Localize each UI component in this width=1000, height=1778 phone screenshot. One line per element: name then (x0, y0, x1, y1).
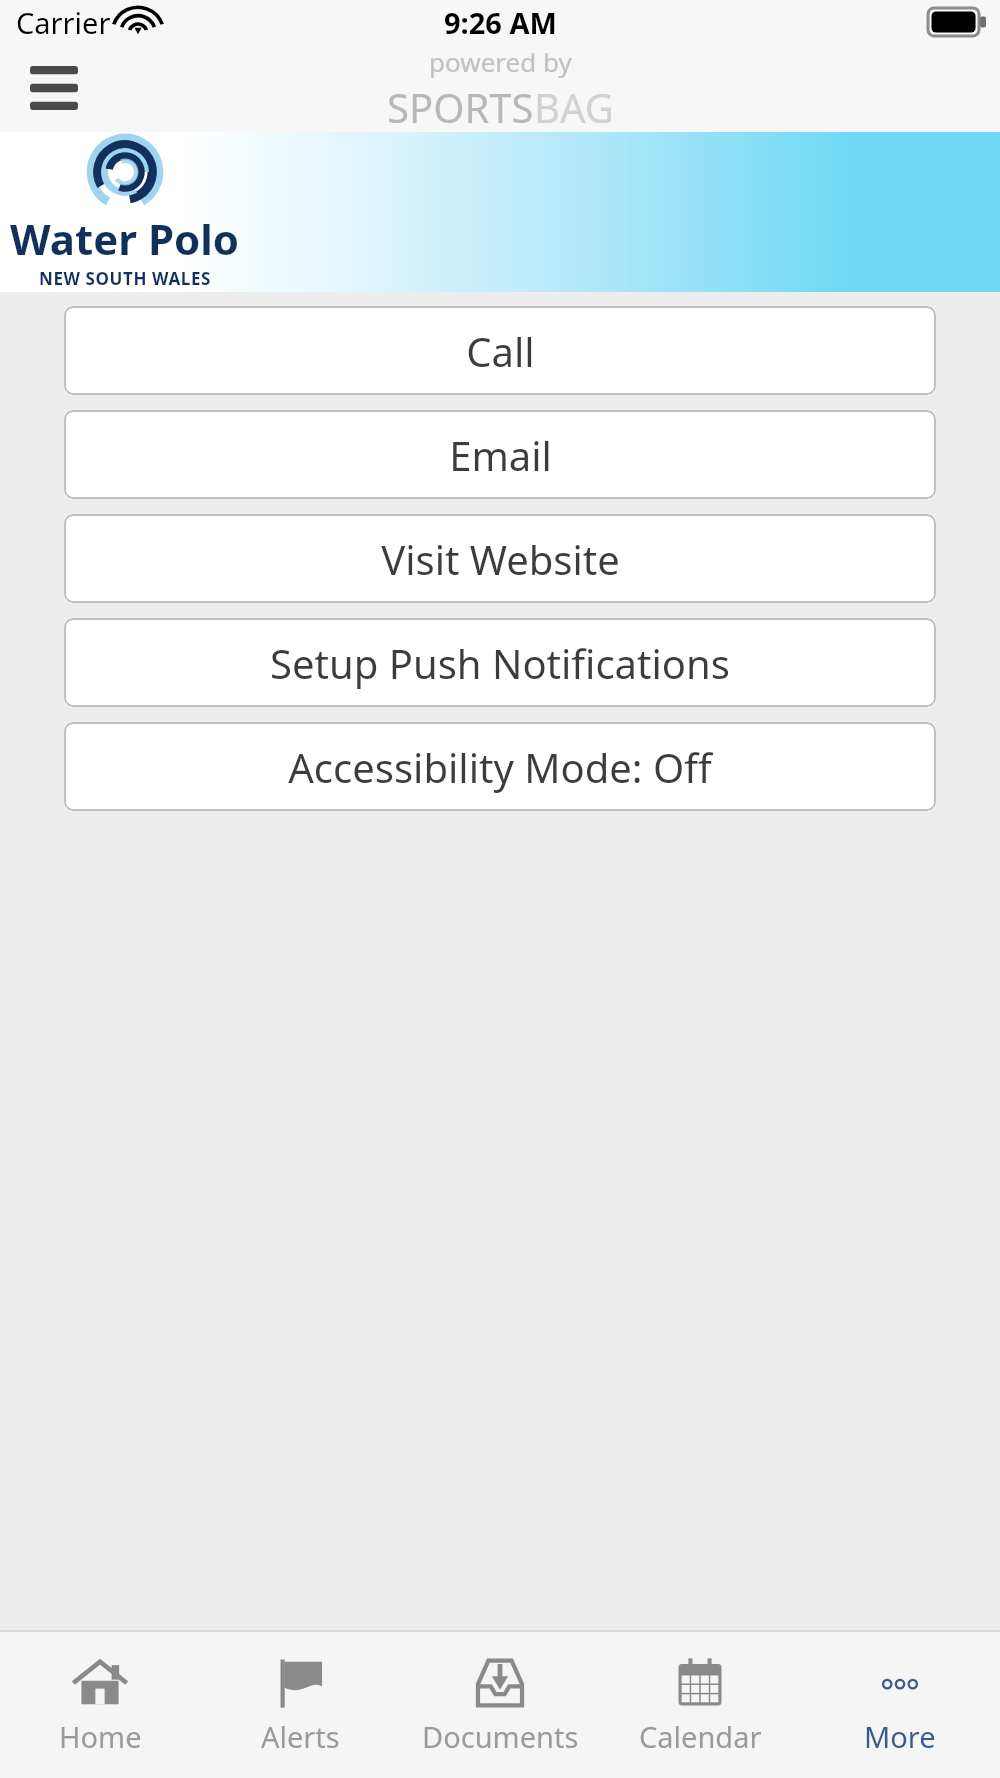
staticText: powered by (429, 44, 572, 79)
staticText: Water Polo (10, 210, 240, 267)
staticText: Accessibility Mode: Off (288, 740, 712, 794)
button[interactable]: Calendar (600, 1632, 800, 1778)
button[interactable]: More (800, 1632, 1000, 1778)
staticText: Visit Website (381, 532, 620, 586)
staticText: Call (466, 324, 535, 378)
button[interactable]: Accessibility Mode: Off (64, 722, 936, 811)
button[interactable]: Home (0, 1632, 200, 1778)
staticText: Setup Push Notifications (270, 636, 730, 690)
button[interactable]: Email (64, 410, 936, 499)
staticText: Home (59, 1717, 142, 1756)
staticText: NEW SOUTH WALES (39, 267, 212, 290)
staticText: Documents (422, 1717, 579, 1756)
staticText: SPORTS (387, 80, 534, 132)
button[interactable]: Menu (18, 54, 90, 122)
staticText: More (864, 1717, 936, 1756)
staticText: Email (449, 428, 552, 482)
button[interactable]: Setup Push Notifications (64, 618, 936, 707)
button[interactable]: Documents (400, 1632, 600, 1778)
button[interactable]: Call (64, 306, 936, 395)
staticText: Calendar (639, 1717, 762, 1756)
staticText: Carrier (16, 3, 111, 42)
button[interactable]: Alerts (200, 1632, 400, 1778)
staticText: 9:26 AM (444, 3, 557, 42)
button[interactable]: Visit Website (64, 514, 936, 603)
staticText: BAG (534, 80, 614, 132)
staticText: Alerts (261, 1717, 340, 1756)
